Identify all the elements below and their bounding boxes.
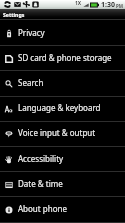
staticText: Date & time (18, 178, 63, 189)
staticText: Search (18, 77, 44, 88)
button[interactable]: Privacy (0, 21, 125, 46)
staticText: 1X (75, 0, 82, 7)
staticText: 1:30 (101, 0, 115, 9)
staticText: Accessibility (18, 153, 64, 164)
staticText: About phone (18, 203, 67, 214)
staticText: SD card & phone storage (18, 52, 112, 63)
staticText: Settings (3, 11, 25, 18)
button[interactable]: About phone (0, 197, 125, 222)
button[interactable]: Accessibility (0, 147, 125, 172)
button[interactable]: Language & keyboard (0, 96, 125, 121)
button[interactable]: Voice input & output (0, 121, 125, 146)
staticText: Language & keyboard (18, 102, 101, 113)
staticText: PM (116, 3, 124, 9)
button[interactable]: Date & time (0, 172, 125, 197)
staticText: Privacy (18, 27, 45, 38)
button[interactable]: Search (0, 71, 125, 96)
button[interactable]: SD card & phone storage (0, 46, 125, 71)
staticText: Voice input & output (18, 127, 96, 138)
